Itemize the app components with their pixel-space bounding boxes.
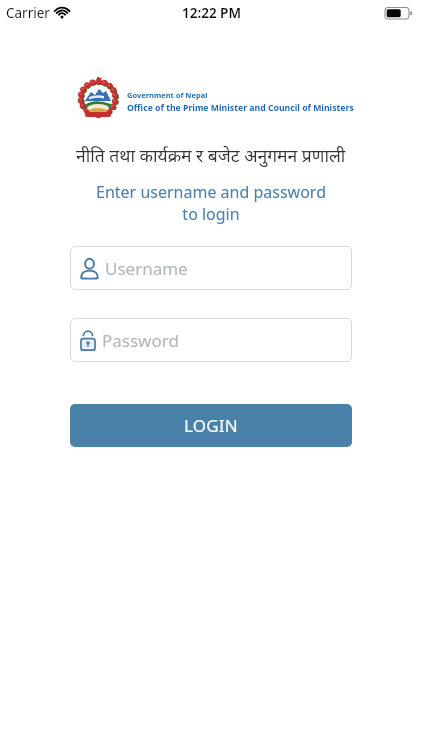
staticText: 12:22 PM [182, 4, 241, 22]
staticText: Government of Nepal [127, 90, 208, 100]
button[interactable]: Password [70, 318, 352, 362]
staticText: Office of the Prime Minister and Council… [127, 102, 354, 114]
staticText: Carrier [6, 4, 50, 22]
staticText: नीति तथा कार्यक्रम र बजेट अनुगमन प्रणाली [76, 143, 346, 167]
staticText: Username [105, 257, 188, 280]
staticText: Password [102, 329, 179, 352]
staticText: Enter username and password to login [96, 181, 326, 225]
button[interactable]: LOGIN [70, 404, 352, 447]
button[interactable]: Username [70, 246, 352, 290]
staticText: LOGIN [184, 414, 238, 437]
